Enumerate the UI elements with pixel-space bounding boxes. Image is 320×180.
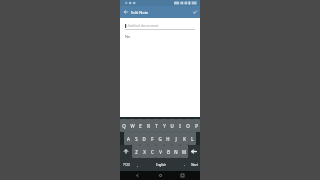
staticText: Q xyxy=(122,123,126,129)
staticText: ?123 xyxy=(123,163,130,167)
button[interactable]: W xyxy=(128,119,136,132)
button[interactable]: L xyxy=(188,132,196,145)
staticText: M xyxy=(182,149,186,155)
button[interactable]: . xyxy=(180,158,188,171)
button[interactable]: D xyxy=(140,132,148,145)
button[interactable]: Home xyxy=(156,171,165,180)
button[interactable]: G xyxy=(156,132,164,145)
button[interactable]: M xyxy=(180,145,188,158)
button[interactable]: Backspace xyxy=(188,145,200,158)
staticText: P xyxy=(195,123,198,129)
button[interactable]: T xyxy=(152,119,160,132)
staticText: Next xyxy=(191,163,198,167)
button[interactable]: J xyxy=(172,132,180,145)
button[interactable]: Back xyxy=(120,6,131,18)
staticText: . xyxy=(184,162,185,167)
staticText: G xyxy=(158,136,162,142)
button[interactable]: Z xyxy=(132,145,140,158)
staticText: L xyxy=(191,136,194,142)
staticText: B xyxy=(167,149,170,155)
button[interactable]: B xyxy=(164,145,172,158)
button[interactable]: Shift xyxy=(120,145,132,158)
button[interactable]: Recent apps xyxy=(178,171,187,180)
staticText: Untitled document xyxy=(126,23,159,28)
button[interactable]: Save note xyxy=(189,6,200,18)
staticText: No xyxy=(125,34,131,39)
staticText: F xyxy=(151,136,154,142)
staticText: D xyxy=(142,136,146,142)
button[interactable]: A xyxy=(124,132,132,145)
button[interactable]: Back xyxy=(133,171,142,180)
staticText: Z xyxy=(135,149,138,155)
button[interactable]: I xyxy=(176,119,184,132)
button[interactable]: P xyxy=(192,119,200,132)
button[interactable]: U xyxy=(168,119,176,132)
button[interactable]: V xyxy=(156,145,164,158)
button[interactable]: English xyxy=(141,158,180,171)
button[interactable]: F xyxy=(148,132,156,145)
button[interactable]: R xyxy=(144,119,152,132)
staticText: H xyxy=(166,136,170,142)
staticText: O xyxy=(186,123,190,129)
staticText: X xyxy=(143,149,146,155)
staticText: Edit Note xyxy=(131,10,149,15)
staticText: N xyxy=(174,149,178,155)
button[interactable]: Y xyxy=(160,119,168,132)
staticText: V xyxy=(159,149,162,155)
button[interactable]: ?123 xyxy=(120,158,133,171)
staticText: , xyxy=(137,162,138,167)
button[interactable]: K xyxy=(180,132,188,145)
staticText: A xyxy=(127,136,130,142)
staticText: C xyxy=(151,149,154,155)
staticText: K xyxy=(183,136,186,142)
button[interactable]: S xyxy=(132,132,140,145)
button[interactable]: H xyxy=(164,132,172,145)
staticText: S xyxy=(135,136,138,142)
button[interactable]: N xyxy=(172,145,180,158)
button[interactable]: C xyxy=(148,145,156,158)
staticText: T xyxy=(155,123,158,129)
staticText: J xyxy=(175,136,177,142)
button[interactable]: , xyxy=(133,158,141,171)
button[interactable]: E xyxy=(136,119,144,132)
staticText: English xyxy=(156,163,166,167)
button[interactable]: X xyxy=(140,145,148,158)
button[interactable]: Next xyxy=(188,158,200,171)
staticText: R xyxy=(147,123,150,129)
staticText: I xyxy=(179,123,181,129)
button[interactable]: O xyxy=(184,119,192,132)
staticText: Y xyxy=(163,123,166,129)
staticText: U xyxy=(170,123,174,129)
button[interactable]: Q xyxy=(120,119,128,132)
staticText: E xyxy=(139,123,142,129)
staticText: W xyxy=(130,123,135,129)
